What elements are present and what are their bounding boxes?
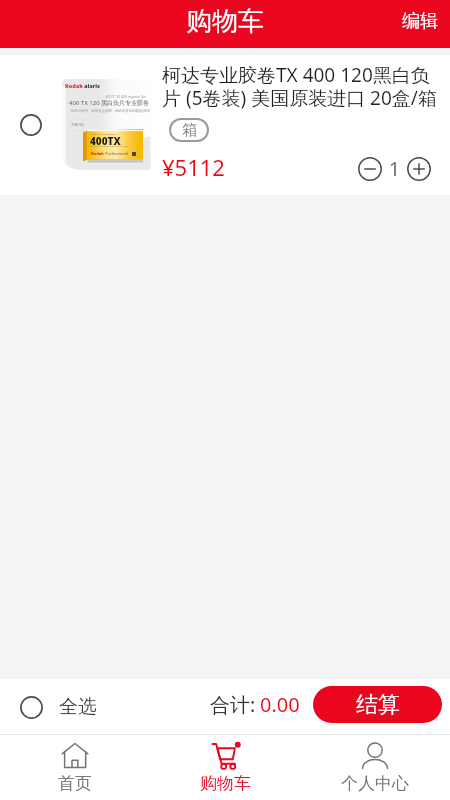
staticText: Kodak [65,82,83,89]
button[interactable]: 首页 [0,735,150,800]
staticText: 购物车 [186,5,264,38]
staticText: alaris [84,82,100,89]
staticText: 全选 [59,695,97,719]
staticText: 箱 [182,121,197,140]
staticText: 0.00 [260,691,300,718]
button[interactable]: 柯达专业胶卷TX 400 120黑白负片 [52,55,442,195]
staticText: 1 [382,155,407,182]
staticText: 400 TX 120 B/W negative film [105,95,147,99]
staticText: 合计: [210,691,256,718]
staticText: 柯达专业胶卷TX 400 120黑白负片 (5卷装) 美国原装进口 20盒/箱 [162,62,437,111]
staticText: 编辑 [402,10,438,33]
staticText: 400 TX 120 黑白负片专业胶卷 [69,99,150,107]
button[interactable]: Increase quantity [407,157,431,181]
button[interactable]: 个人中心 [300,735,450,800]
button[interactable]: Decrease quantity [358,157,382,181]
staticText: BLACK & WHITE NEGATIVE FILM [91,144,129,147]
button[interactable]: 结算 [313,686,442,723]
staticText: 400TX [90,134,121,148]
staticText: Professional [105,151,129,156]
staticText: 个人中心 [341,773,409,794]
button[interactable]: 购物车 [150,735,300,800]
staticText: KODAK PROFESSIONAL [91,132,119,135]
button[interactable]: Select item [11,105,51,145]
staticText: 5卷/盒 [72,122,84,127]
button[interactable]: 全选 [0,687,109,727]
staticText: Kodak [91,151,104,156]
staticText: · 超高分辨率 · 适用专业摄影 · 细腻丰富的细颗粒表现 [69,108,150,113]
button[interactable]: 箱 [169,118,209,142]
staticText: 结算 [356,691,400,719]
staticText: 购物车 [200,773,251,794]
staticText: ¥5112 [162,152,225,182]
button[interactable]: 编辑 [390,0,450,45]
staticText: 首页 [58,773,92,794]
